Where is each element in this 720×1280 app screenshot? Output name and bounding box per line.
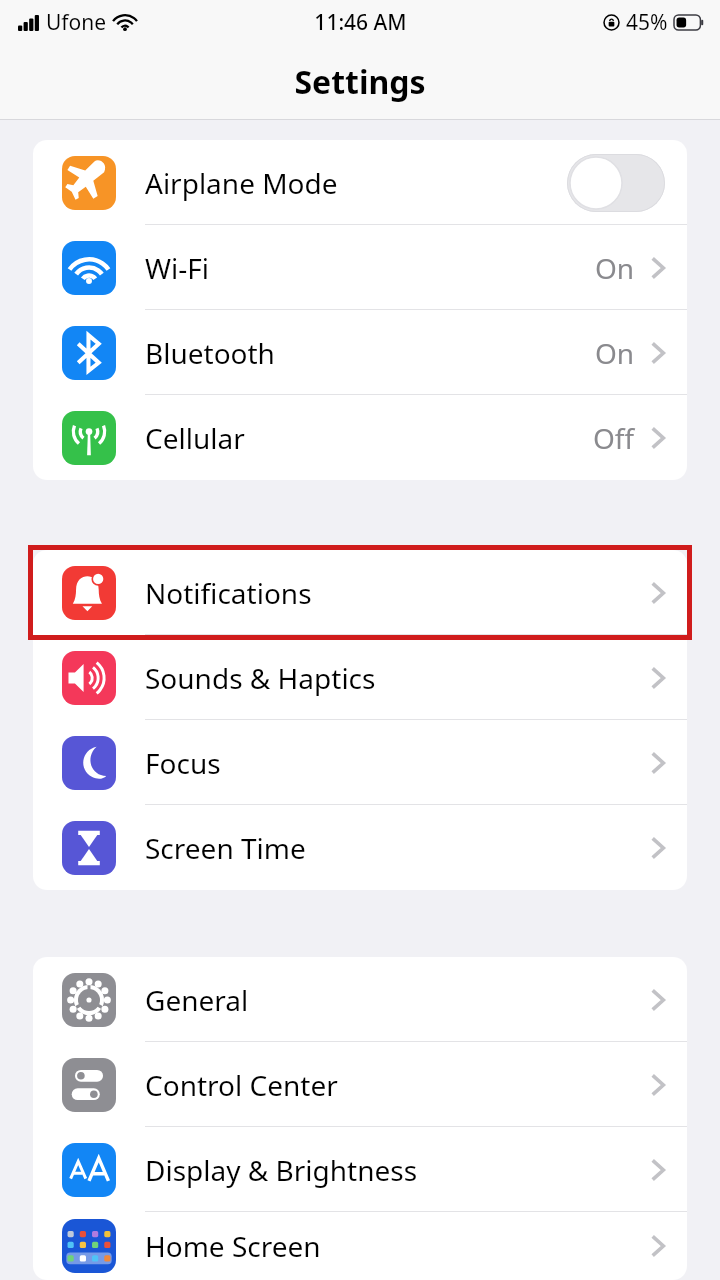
button[interactable]: Display & Brightness	[33, 1127, 687, 1212]
staticText: Wi-Fi	[145, 249, 595, 287]
button[interactable]: Home Screen	[33, 1212, 687, 1280]
staticText: 11:46 AM	[314, 8, 407, 37]
staticText: On	[595, 334, 635, 372]
button[interactable]: Focus	[33, 720, 687, 805]
staticText: 45%	[626, 8, 668, 37]
staticText: Focus	[145, 744, 651, 782]
button[interactable]: Airplane Mode toggle	[567, 154, 665, 212]
button[interactable]: General	[33, 957, 687, 1042]
staticText: General	[145, 981, 651, 1019]
button[interactable]: Sounds & Haptics	[33, 635, 687, 720]
staticText: Display & Brightness	[145, 1151, 651, 1189]
staticText: Sounds & Haptics	[145, 659, 651, 697]
staticText: Home Screen	[145, 1227, 651, 1265]
staticText: Ufone	[46, 8, 107, 37]
button[interactable]: Control Center	[33, 1042, 687, 1127]
staticText: On	[595, 249, 635, 287]
button[interactable]: Cellular	[33, 395, 687, 480]
staticText: Notifications	[145, 574, 651, 612]
staticText: Bluetooth	[145, 334, 595, 372]
staticText: Off	[593, 419, 635, 457]
button[interactable]: Notifications	[33, 550, 687, 635]
button[interactable]: Wi-Fi	[33, 225, 687, 310]
staticText: Screen Time	[145, 829, 651, 867]
staticText: Settings	[294, 60, 426, 104]
staticText: Airplane Mode	[145, 164, 567, 202]
staticText: Cellular	[145, 419, 593, 457]
button[interactable]: Screen Time	[33, 805, 687, 890]
staticText: Control Center	[145, 1066, 651, 1104]
button[interactable]: Airplane Mode	[33, 140, 687, 225]
button[interactable]: Bluetooth	[33, 310, 687, 395]
